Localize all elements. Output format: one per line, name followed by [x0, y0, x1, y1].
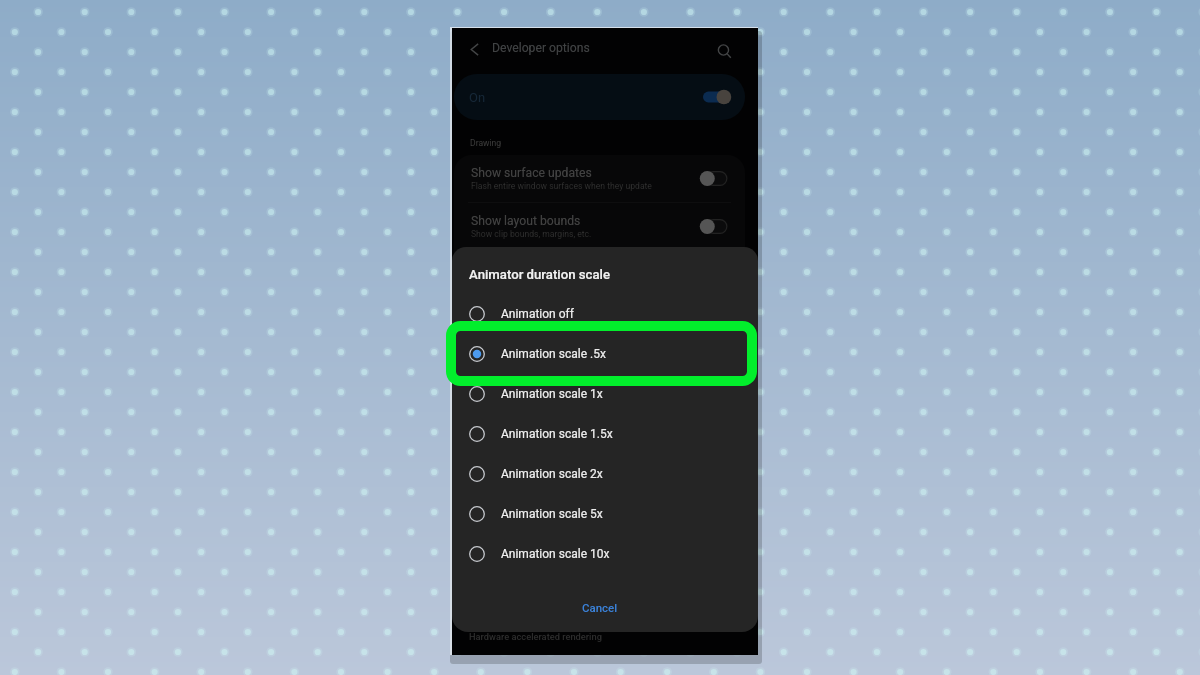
staticText: Animation off: [501, 307, 574, 321]
button[interactable]: Show layout bounds: [454, 203, 745, 250]
button[interactable]: Animation off: [452, 294, 758, 334]
button[interactable]: Animation scale .5x: [452, 334, 758, 374]
staticText: Developer options: [492, 41, 590, 55]
button[interactable]: Search: [710, 37, 738, 65]
button[interactable]: Cancel: [566, 594, 634, 621]
button[interactable]: Back: [462, 37, 487, 62]
staticText: Hardware accelerated rendering: [469, 631, 602, 642]
staticText: Animation scale 1x: [501, 387, 603, 401]
button[interactable]: Toggle: [700, 219, 728, 234]
staticText: Animation scale 5x: [501, 507, 603, 521]
button[interactable]: Toggle: [700, 171, 728, 186]
staticText: Show layout bounds: [471, 214, 581, 228]
staticText: Show surface updates: [471, 166, 592, 180]
staticText: Show clip bounds, margins, etc.: [471, 229, 592, 239]
staticText: Animation scale .5x: [501, 347, 606, 361]
staticText: Animation scale 2x: [501, 467, 603, 481]
button[interactable]: Animation scale 1.5x: [452, 414, 758, 454]
button[interactable]: Animation scale 2x: [452, 454, 758, 494]
staticText: On: [469, 90, 486, 105]
button[interactable]: On: [454, 74, 745, 120]
staticText: Drawing: [470, 138, 502, 148]
button[interactable]: Animation scale 5x: [452, 494, 758, 534]
staticText: Cancel: [582, 601, 618, 614]
button[interactable]: Show surface updates: [454, 155, 745, 202]
staticText: Animator duration scale: [469, 267, 610, 282]
staticText: Flash entire window surfaces when they u…: [471, 181, 652, 191]
staticText: Animation scale 1.5x: [501, 427, 613, 441]
button[interactable]: Animation scale 10x: [452, 534, 758, 574]
button[interactable]: Animation scale 1x: [452, 374, 758, 414]
staticText: Animation scale 10x: [501, 547, 610, 561]
button[interactable]: Developer options on: [703, 89, 732, 105]
